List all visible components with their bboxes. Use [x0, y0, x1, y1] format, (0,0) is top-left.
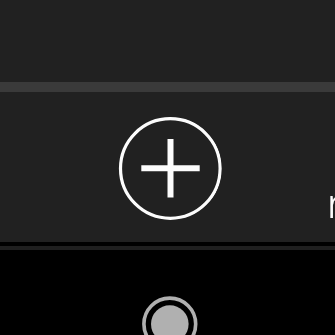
staticText: nnn — [327, 174, 335, 230]
button[interactable]: Home — [139, 294, 200, 335]
button[interactable]: Add — [117, 116, 222, 221]
